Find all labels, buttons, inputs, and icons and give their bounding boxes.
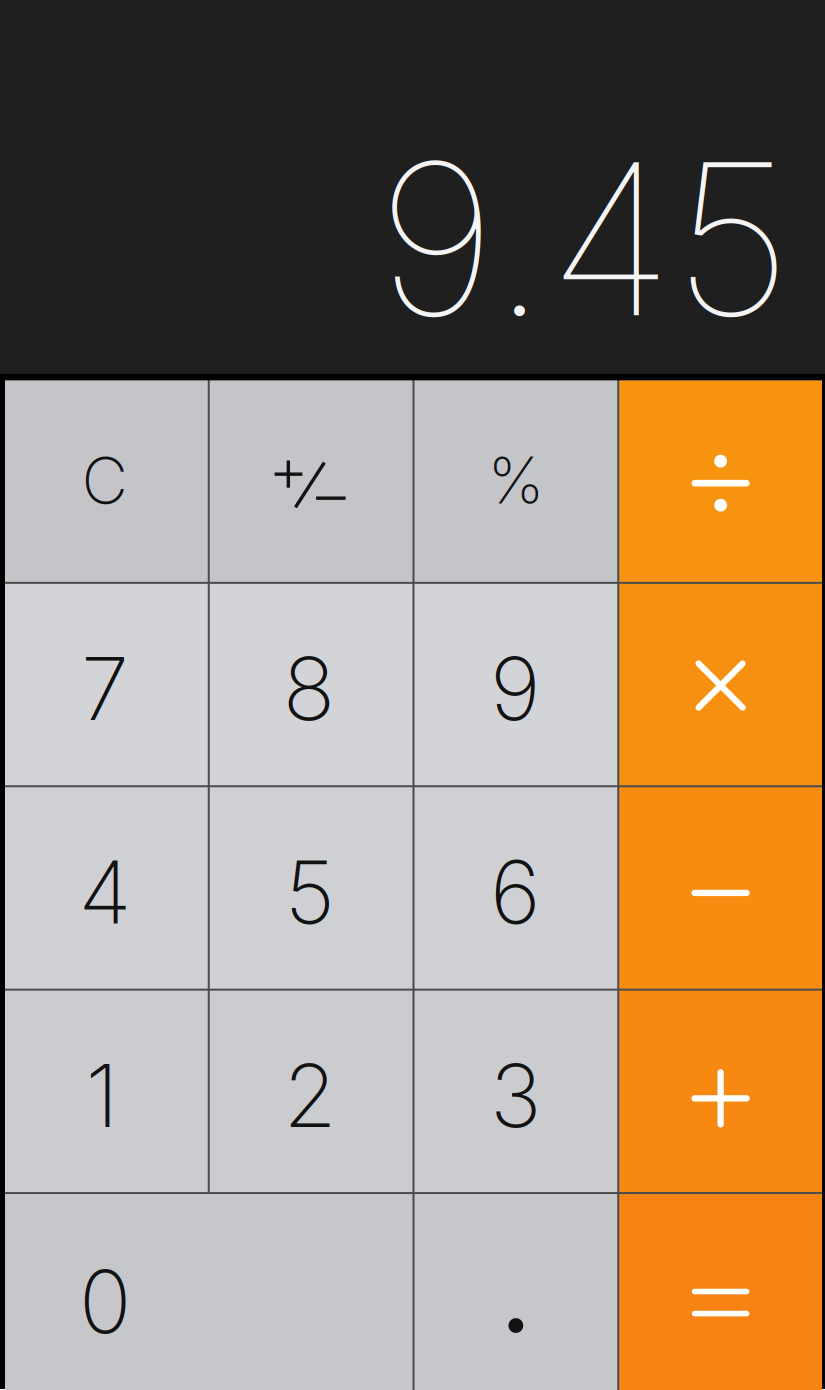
button[interactable]: 5	[210, 787, 413, 989]
button[interactable]: 1	[5, 991, 208, 1192]
button[interactable]: 0	[5, 1194, 412, 1390]
staticText: 6	[490, 839, 541, 944]
staticText: 4	[78, 839, 131, 944]
button[interactable]: Divide	[619, 380, 822, 582]
button[interactable]: Add	[619, 991, 822, 1192]
staticText: %	[487, 441, 544, 519]
button[interactable]: Subtract	[619, 787, 822, 989]
button[interactable]: Toggle sign	[210, 380, 413, 582]
button[interactable]: 7	[5, 584, 208, 785]
staticText: 9	[490, 636, 541, 741]
staticText: 2	[283, 1043, 336, 1148]
button[interactable]: 9	[414, 584, 617, 785]
button[interactable]: C	[5, 380, 208, 582]
staticText: 0	[79, 1249, 131, 1354]
staticText: C	[81, 441, 127, 519]
button[interactable]: 8	[210, 584, 413, 785]
button[interactable]: Multiply	[619, 584, 822, 785]
button[interactable]: 2	[210, 991, 413, 1192]
staticText: 1	[85, 1043, 118, 1148]
staticText: 8	[283, 636, 335, 741]
button[interactable]: 6	[414, 787, 617, 989]
button[interactable]: 4	[5, 787, 208, 989]
button[interactable]: Equals	[619, 1194, 822, 1390]
staticText: 7	[81, 636, 129, 741]
staticText: 9.45	[377, 111, 792, 366]
button[interactable]: 3	[414, 991, 617, 1192]
button[interactable]: %	[414, 380, 617, 582]
staticText: 3	[490, 1043, 541, 1148]
button[interactable]: Decimal point	[414, 1194, 617, 1390]
staticText: 5	[285, 839, 335, 944]
